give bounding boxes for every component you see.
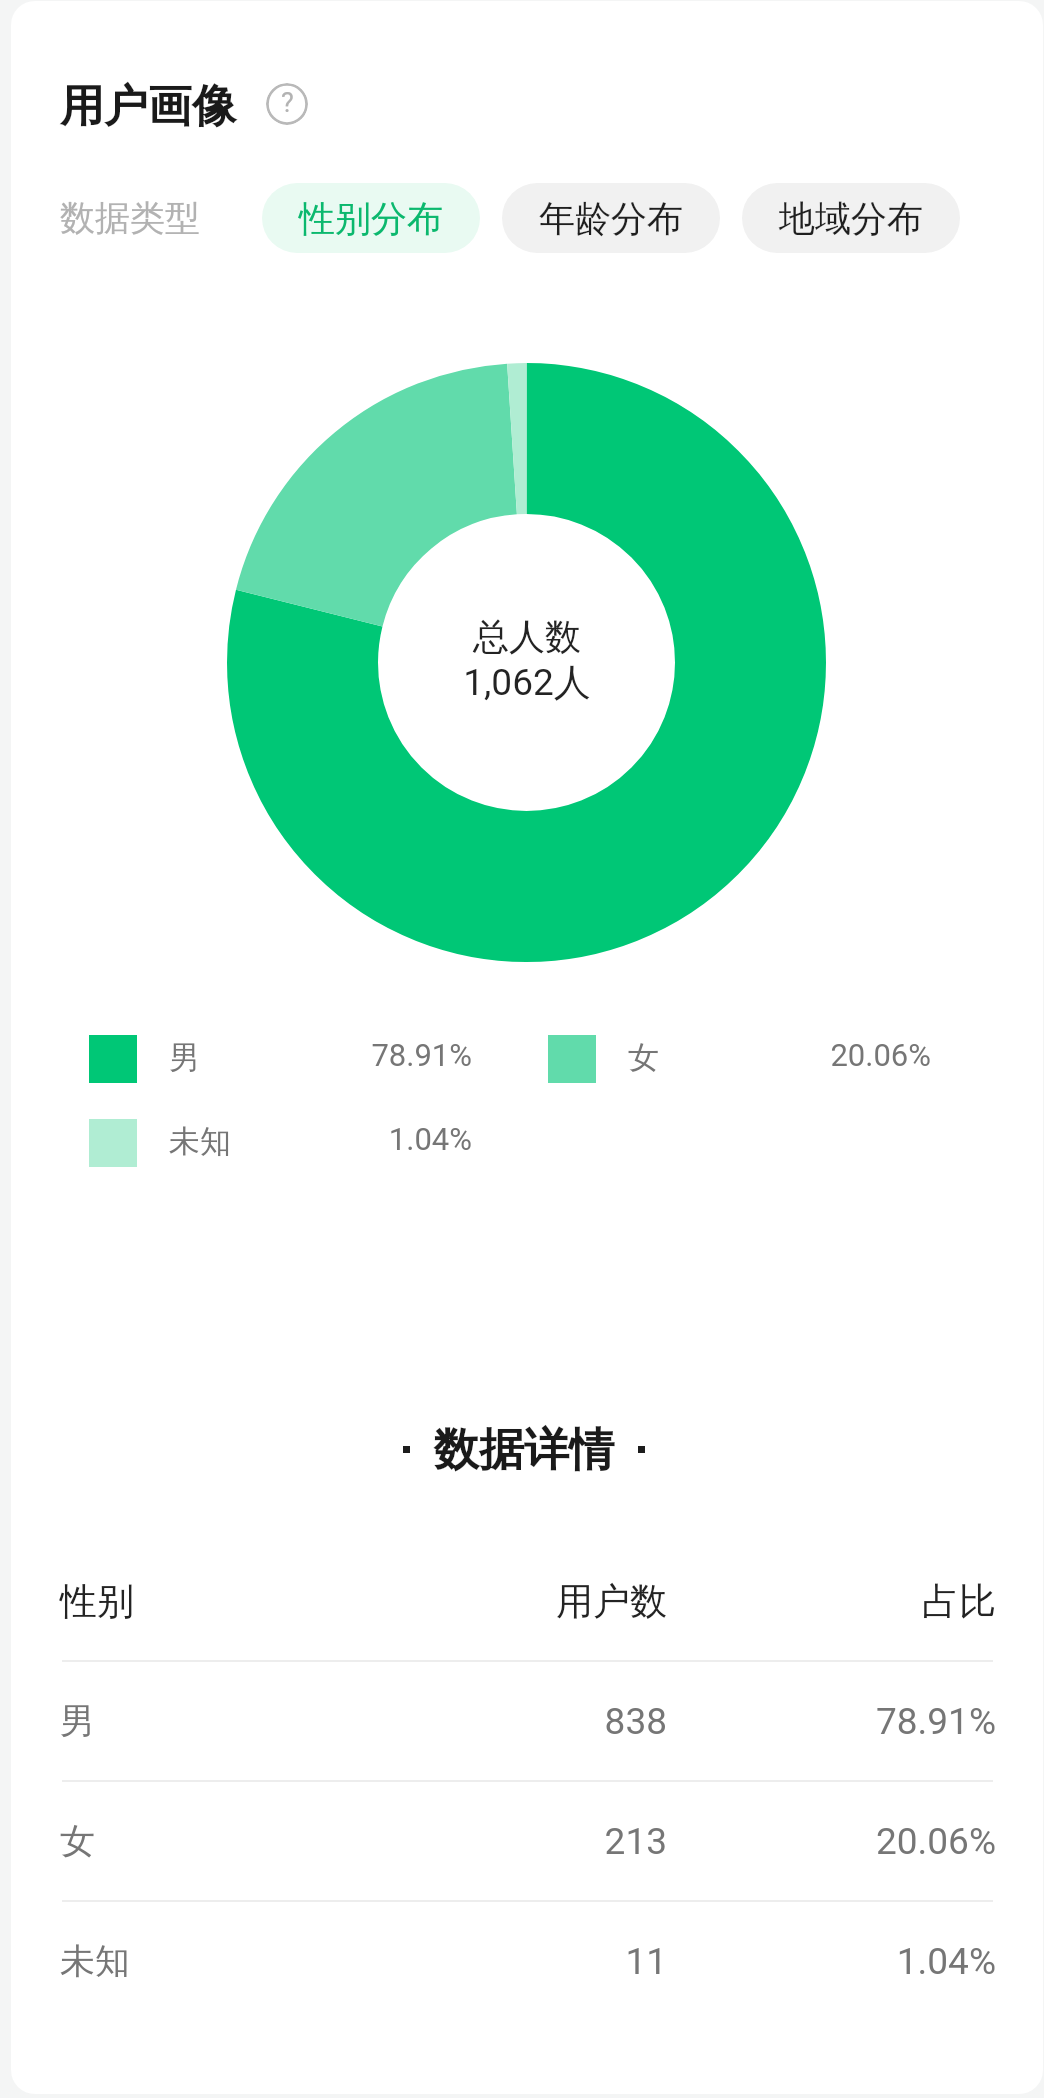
other: 性别分布环形图	[227, 363, 826, 962]
staticText: 用户画像	[60, 79, 236, 134]
button[interactable]: 男	[89, 1035, 548, 1083]
staticText: 用户数	[387, 1578, 667, 1625]
staticText: 20.06%	[667, 1820, 996, 1863]
button[interactable]: 帮助说明	[266, 83, 308, 125]
staticText: 1.04%	[667, 1940, 996, 1983]
staticText: 1,062人	[463, 659, 591, 706]
staticText: 数据详情	[434, 1422, 614, 1479]
staticText: 1.04%	[388, 1121, 472, 1157]
staticText: 性别	[60, 1578, 387, 1625]
staticText: 女	[60, 1819, 387, 1863]
staticText: 女	[628, 1038, 659, 1077]
button[interactable]: 男	[0, 1662, 1044, 1780]
button[interactable]: 性别分布	[262, 183, 480, 253]
staticText: 未知	[169, 1122, 231, 1161]
staticText: 未知	[60, 1939, 387, 1983]
button[interactable]: 年龄分布	[502, 183, 720, 253]
button[interactable]: 地域分布	[742, 183, 960, 253]
staticText: 男	[169, 1038, 200, 1077]
staticText: ?	[281, 87, 294, 119]
staticText: 性别分布	[299, 196, 443, 241]
staticText: 占比	[667, 1578, 996, 1625]
staticText: 年龄分布	[539, 196, 683, 241]
staticText: 男	[60, 1699, 387, 1743]
button[interactable]: 未知	[0, 1902, 1044, 2020]
staticText: 213	[387, 1820, 667, 1863]
staticText: 20.06%	[830, 1037, 931, 1073]
staticText: 78.91%	[667, 1700, 996, 1743]
staticText: 11	[387, 1940, 667, 1983]
button[interactable]: 女	[0, 1782, 1044, 1900]
button[interactable]: 未知	[89, 1119, 548, 1167]
staticText: 数据类型	[60, 196, 200, 240]
staticText: 地域分布	[779, 196, 923, 241]
staticText: 838	[387, 1700, 667, 1743]
staticText: 78.91%	[371, 1037, 472, 1073]
button[interactable]: 女	[548, 1035, 1007, 1083]
staticText: 总人数	[473, 614, 581, 659]
